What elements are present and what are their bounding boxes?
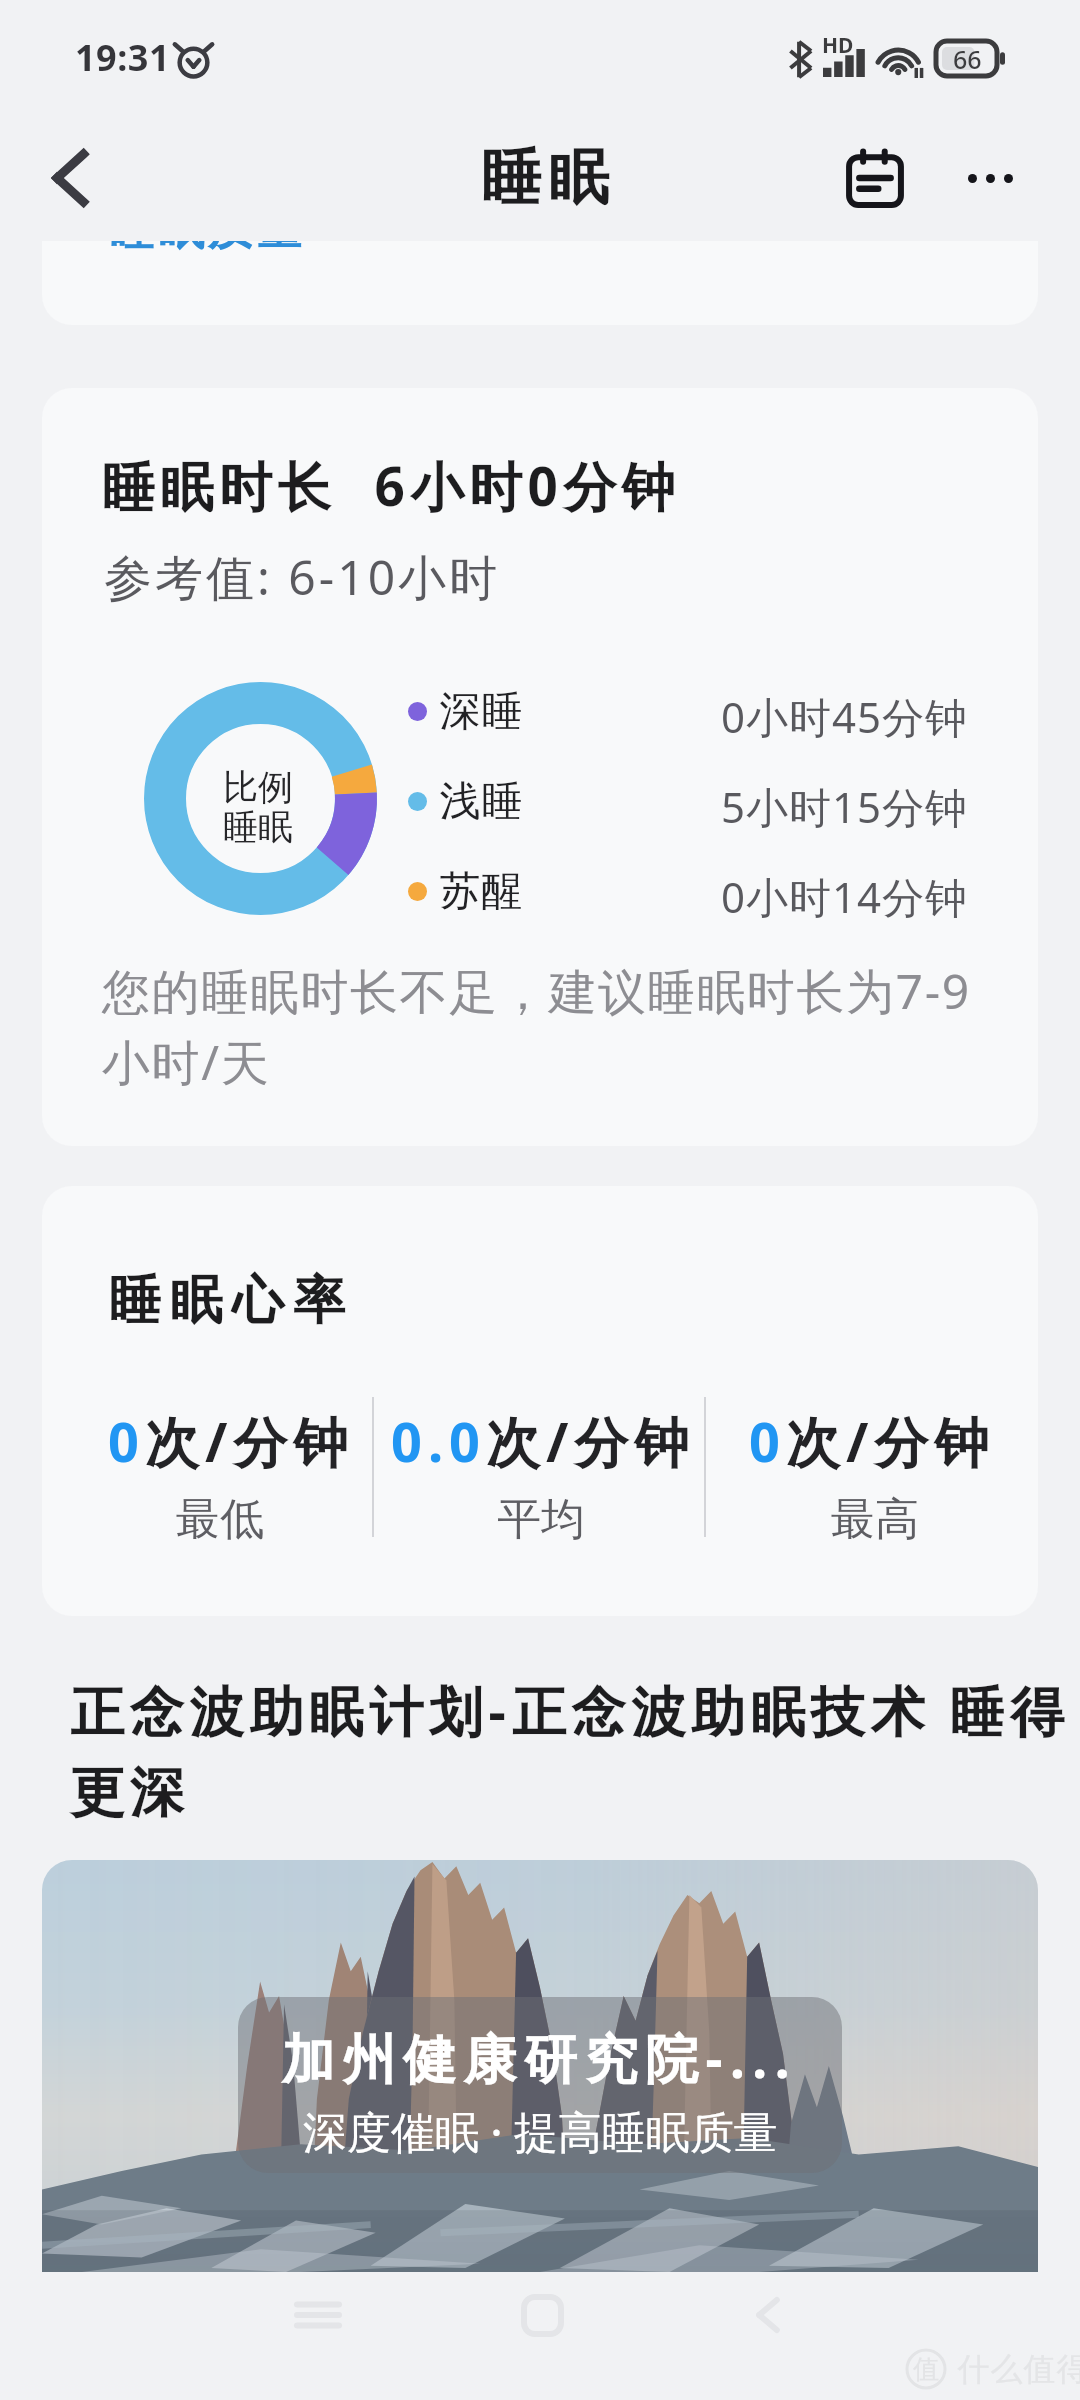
button[interactable]: 睡眠质量 bbox=[42, 241, 1038, 325]
staticText: 次/分钟 bbox=[786, 1404, 993, 1478]
button[interactable]: Recents bbox=[268, 2265, 368, 2365]
staticText: 深度催眠 · 提高睡眠质量 bbox=[303, 2101, 778, 2161]
staticText: 睡眠时长 6小时0分钟 bbox=[102, 449, 681, 521]
staticText: 0 bbox=[749, 1404, 786, 1478]
staticText: 值 bbox=[913, 2353, 939, 2386]
staticText: 19:31 bbox=[75, 33, 170, 82]
button[interactable]: 睡眠时长 6小时0分钟 bbox=[42, 388, 1038, 1146]
button[interactable]: 睡眠心率 bbox=[42, 1186, 1038, 1616]
staticText: 66 bbox=[953, 42, 982, 76]
button[interactable]: Home bbox=[492, 2265, 592, 2365]
staticText: 什么值得买 bbox=[957, 2349, 1080, 2389]
staticText: 次/分钟 bbox=[486, 1404, 695, 1478]
staticText: 5小时15分钟 bbox=[721, 778, 969, 835]
staticText: 浅睡 bbox=[439, 776, 523, 828]
staticText: 睡眠心率 bbox=[104, 1268, 350, 1334]
staticText: 最高 bbox=[831, 1492, 919, 1547]
button[interactable]: Back bbox=[28, 136, 112, 220]
button[interactable]: Back bbox=[718, 2265, 818, 2365]
staticText: 0小时45分钟 bbox=[721, 688, 969, 745]
staticText: 0小时14分钟 bbox=[721, 868, 969, 925]
staticText: 正念波助眠计划-正念波助眠技术 睡得更深 bbox=[70, 1673, 1072, 1828]
button[interactable]: Calendar bbox=[820, 123, 930, 233]
staticText: 加州健康研究院-... bbox=[282, 2021, 798, 2093]
staticText: 苏醒 bbox=[439, 866, 523, 918]
staticText: 0.0 bbox=[391, 1404, 486, 1478]
staticText: 次/分钟 bbox=[145, 1404, 352, 1478]
button[interactable]: 加州健康研究院-... bbox=[42, 1860, 1038, 2272]
staticText: 睡眠质量 bbox=[108, 241, 304, 258]
staticText: 您的睡眠时长不足，建议睡眠时长为7-9小时/天 bbox=[102, 958, 992, 1095]
staticText: 参考值: 6-10小时 bbox=[104, 544, 501, 610]
staticText: HD bbox=[822, 31, 854, 60]
staticText: 平均 bbox=[497, 1492, 585, 1547]
staticText: 睡眠 bbox=[477, 140, 613, 216]
button[interactable]: More options bbox=[936, 123, 1046, 233]
staticText: 睡眠 bbox=[223, 805, 293, 849]
staticText: 最低 bbox=[176, 1492, 264, 1547]
staticText: 0 bbox=[108, 1404, 145, 1478]
staticText: 比例 bbox=[223, 765, 293, 809]
staticText: 深睡 bbox=[439, 686, 523, 738]
